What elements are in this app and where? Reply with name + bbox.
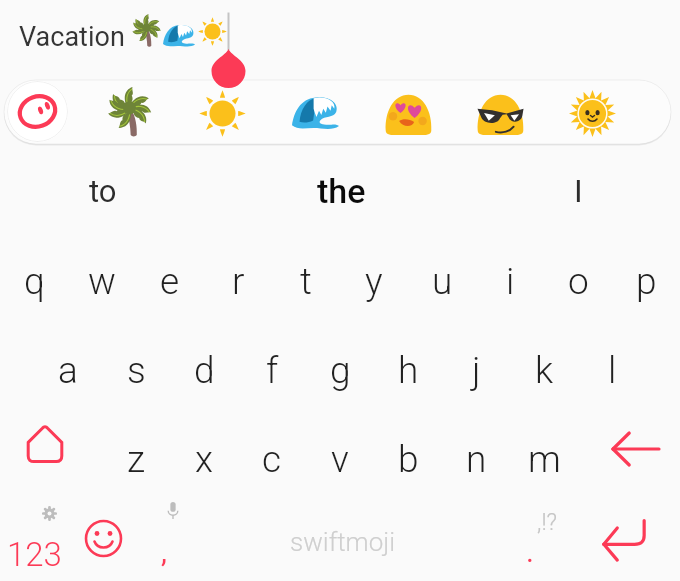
staticText: n — [466, 438, 487, 481]
staticText: x — [195, 438, 214, 481]
button[interactable]: t — [272, 241, 340, 321]
button[interactable]: f — [238, 330, 306, 410]
button[interactable]: Emoji — [454, 80, 546, 147]
button[interactable]: h — [374, 330, 442, 410]
button[interactable]: Emoji — [83, 80, 175, 147]
button[interactable]: Shift — [11, 410, 79, 478]
button[interactable]: e — [136, 241, 204, 321]
button[interactable]: x — [170, 419, 238, 499]
staticText: to — [89, 173, 117, 209]
button[interactable]: Emoji — [269, 80, 361, 147]
button[interactable]: Backspace — [601, 415, 669, 483]
button[interactable]: o — [544, 241, 612, 321]
button[interactable]: v — [306, 419, 374, 499]
button[interactable]: p — [612, 241, 680, 321]
staticText: j — [472, 349, 481, 392]
staticText: e — [160, 260, 180, 303]
staticText: . — [526, 534, 534, 569]
button[interactable]: c — [238, 419, 306, 499]
button[interactable]: q — [0, 241, 68, 321]
staticText: c — [262, 438, 282, 481]
staticText: f — [266, 349, 279, 392]
button[interactable]: j — [442, 330, 510, 410]
button[interactable]: 123 — [0, 498, 72, 581]
button[interactable]: I — [478, 154, 678, 228]
staticText: r — [232, 260, 245, 303]
staticText: l — [608, 349, 617, 392]
button[interactable]: l — [578, 330, 646, 410]
staticText: swiftmoji — [290, 527, 395, 557]
staticText: o — [568, 260, 589, 303]
button[interactable]: i — [476, 241, 544, 321]
button[interactable]: s — [102, 330, 170, 410]
staticText: q — [24, 260, 45, 303]
button[interactable]: Emoji — [176, 80, 268, 147]
button[interactable]: z — [102, 419, 170, 499]
staticText: i — [506, 260, 515, 303]
staticText: d — [194, 349, 215, 392]
staticText: b — [398, 438, 419, 481]
button[interactable]: d — [170, 330, 238, 410]
button[interactable]: Emoji — [546, 80, 638, 147]
button[interactable]: Enter — [586, 500, 662, 578]
button[interactable]: w — [68, 241, 136, 321]
button[interactable]: Emoji — [72, 500, 132, 578]
button[interactable]: Recent emoji — [7, 81, 68, 142]
staticText: v — [331, 438, 349, 481]
staticText: k — [535, 349, 554, 392]
staticText: ,!? — [537, 509, 558, 536]
button[interactable]: y — [340, 241, 408, 321]
staticText: u — [432, 260, 453, 303]
button[interactable]: k — [510, 330, 578, 410]
staticText: h — [398, 349, 419, 392]
staticText: Vacation — [19, 21, 125, 53]
button[interactable]: ,!? — [500, 498, 568, 581]
button[interactable]: r — [204, 241, 272, 321]
staticText: y — [365, 260, 383, 303]
button[interactable]: to — [3, 154, 203, 228]
button[interactable]: b — [374, 419, 442, 499]
staticText: t — [300, 260, 312, 303]
staticText: z — [127, 438, 146, 481]
staticText: m — [528, 438, 561, 481]
button[interactable]: m — [510, 419, 578, 499]
button[interactable]: , — [140, 498, 208, 581]
button[interactable]: swiftmoji — [196, 500, 488, 581]
staticText: p — [636, 260, 657, 303]
button[interactable]: a — [34, 330, 102, 410]
staticText: s — [127, 349, 146, 392]
button[interactable]: g — [306, 330, 374, 410]
button[interactable]: n — [442, 419, 510, 499]
button[interactable]: u — [408, 241, 476, 321]
staticText: I — [574, 172, 583, 210]
staticText: w — [88, 260, 116, 303]
staticText: 123 — [7, 535, 62, 574]
button[interactable]: Emoji — [362, 80, 454, 147]
staticText: g — [330, 349, 351, 392]
staticText: , — [161, 534, 167, 569]
button[interactable]: the — [241, 154, 441, 228]
staticText: a — [58, 349, 78, 392]
staticText: the — [317, 171, 366, 211]
